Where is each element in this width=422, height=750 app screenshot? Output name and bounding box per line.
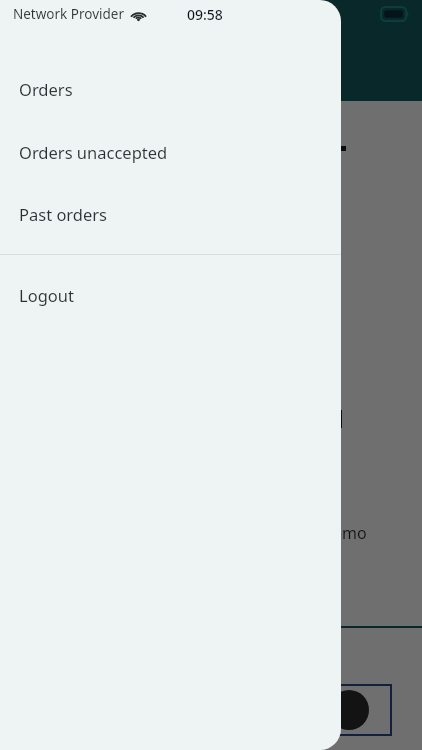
- staticText: Orders unaccepted: [19, 141, 168, 163]
- other: Battery: [381, 7, 409, 21]
- staticText: emo: [333, 522, 367, 544]
- button[interactable]: Orders: [0, 75, 341, 103]
- staticText: Orders: [19, 78, 73, 100]
- staticText: 09:58: [187, 5, 223, 24]
- button[interactable]: Logout: [0, 281, 341, 309]
- button[interactable]: Past orders: [0, 200, 341, 228]
- staticText: Network Provider: [13, 5, 125, 23]
- button[interactable]: Orders unaccepted: [0, 138, 341, 166]
- staticText: Logout: [19, 284, 74, 306]
- staticText: Past orders: [19, 203, 108, 225]
